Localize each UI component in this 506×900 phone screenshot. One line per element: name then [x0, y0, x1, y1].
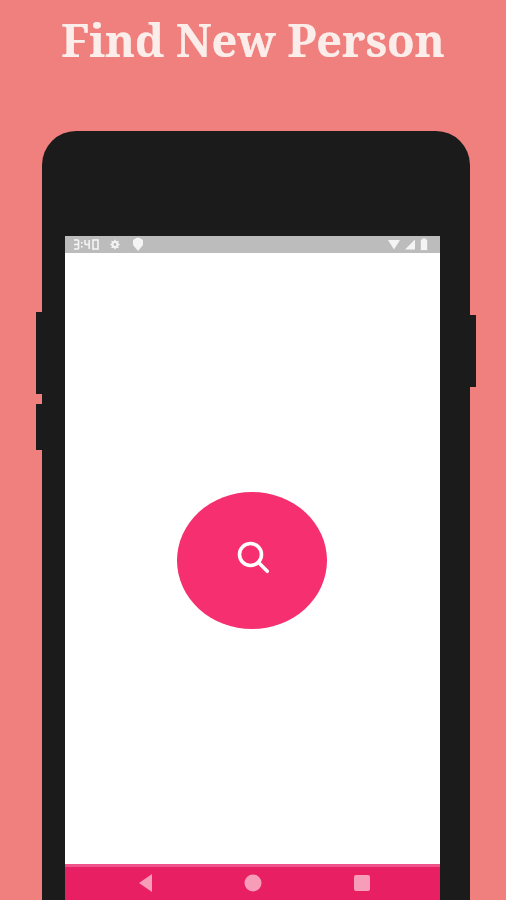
staticText: Find New Person [61, 9, 445, 70]
button[interactable]: Find new person [177, 492, 327, 629]
button[interactable]: Home [217, 864, 289, 900]
button[interactable]: Recent apps [326, 864, 398, 900]
button[interactable]: Back [110, 864, 182, 900]
